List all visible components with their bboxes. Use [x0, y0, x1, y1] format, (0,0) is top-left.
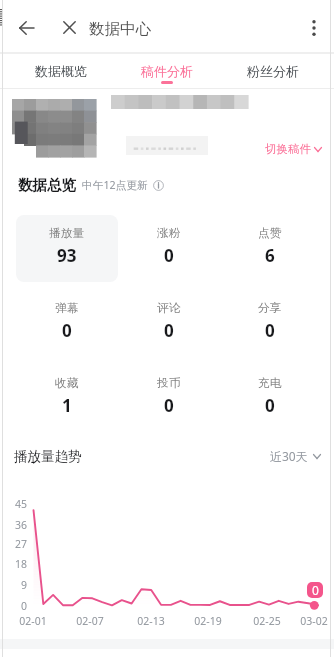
button[interactable]: 粉丝分析	[220, 54, 326, 88]
staticText: 0	[20, 599, 27, 613]
staticText: 0	[164, 244, 174, 267]
staticText: 02-19	[194, 614, 222, 628]
staticText: 数据概览	[35, 63, 87, 79]
staticText: 播放量	[49, 226, 85, 241]
button[interactable]: 切换稿件	[265, 142, 322, 156]
staticText: 稿件分析	[141, 63, 193, 79]
button[interactable]: More options	[296, 10, 331, 45]
staticText: 评论	[157, 301, 181, 316]
button[interactable]: 播放量	[16, 215, 118, 282]
staticText: 6	[265, 244, 275, 267]
button[interactable]: 评论	[118, 290, 219, 357]
staticText: 收藏	[55, 376, 79, 391]
staticText: 数据总览	[18, 176, 76, 194]
staticText: 27	[14, 537, 27, 551]
button[interactable]: 充电	[219, 365, 320, 432]
staticText: 数据中心	[89, 19, 151, 39]
staticText: 0	[265, 319, 275, 342]
staticText: 18	[14, 557, 27, 571]
staticText: 粉丝分析	[247, 63, 299, 79]
button[interactable]: 近30天	[270, 448, 321, 464]
staticText: 02-25	[253, 614, 281, 628]
button[interactable]: 数据概览	[8, 54, 114, 88]
staticText: 02-13	[137, 614, 165, 628]
button[interactable]: 稿件分析	[114, 54, 220, 88]
staticText: 播放量趋势	[14, 448, 82, 465]
button[interactable]: 弹幕	[16, 290, 118, 357]
staticText: 02-07	[76, 614, 104, 628]
staticText: 切换稿件	[265, 142, 311, 156]
staticText: 近30天	[270, 448, 308, 464]
staticText: 0	[265, 394, 275, 417]
button[interactable]: 收藏	[16, 365, 118, 432]
button[interactable]: 分享	[219, 290, 320, 357]
button[interactable]: 涨粉	[118, 215, 219, 282]
button[interactable]: Back	[9, 10, 44, 45]
button[interactable]: 点赞	[219, 215, 320, 282]
staticText: 点赞	[258, 226, 282, 241]
button[interactable]: 投币	[118, 365, 219, 432]
staticText: 充电	[258, 376, 282, 391]
staticText: 0	[62, 319, 72, 342]
staticText: 投币	[157, 376, 181, 391]
staticText: 03-02	[300, 614, 328, 628]
staticText: 0	[164, 319, 174, 342]
staticText: 45	[14, 497, 27, 511]
staticText: 0	[312, 582, 319, 598]
button[interactable]: Close	[52, 10, 87, 45]
staticText: 0	[164, 394, 174, 417]
staticText: 93	[57, 244, 77, 267]
staticText: 1	[62, 394, 72, 417]
staticText: 9	[20, 578, 27, 592]
staticText: 36	[14, 518, 27, 532]
staticText: 涨粉	[157, 226, 181, 241]
staticText: 分享	[258, 301, 282, 316]
staticText: 02-01	[19, 614, 47, 628]
staticText: 弹幕	[55, 301, 79, 316]
staticText: 中午12点更新	[82, 178, 148, 193]
